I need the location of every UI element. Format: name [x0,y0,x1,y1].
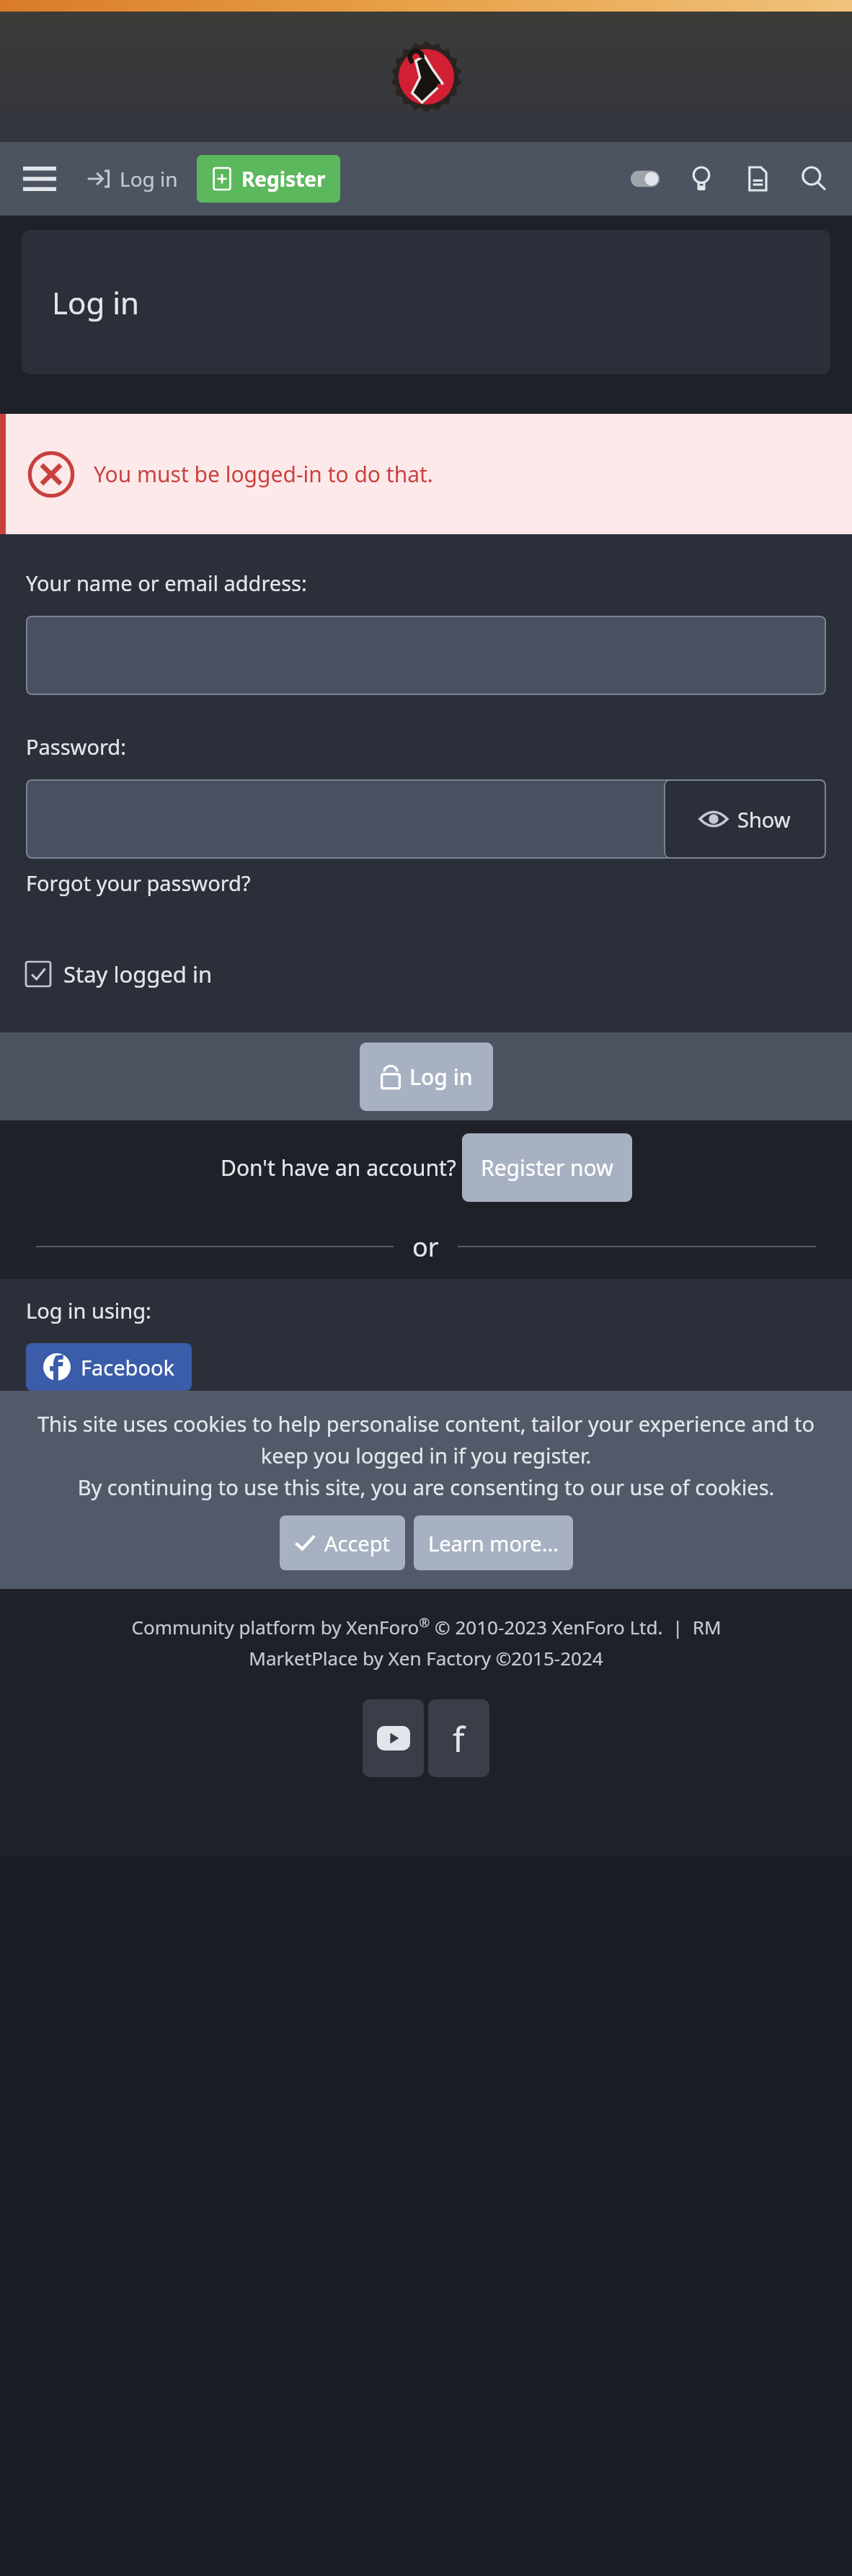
staticText: Stay logged in [63,959,213,989]
staticText: Password: [26,732,126,761]
staticText: Don't have an account? [221,1153,456,1182]
staticText: Facebook [81,1353,175,1381]
button[interactable]: Tips [673,142,729,216]
staticText: You must be logged-in to do that. [94,459,433,489]
button[interactable]: Stay logged in [26,959,213,989]
staticText: Your name or email address: [26,569,307,597]
staticText: Register [241,165,326,192]
staticText: This site uses cookies to help personali… [29,1409,823,1501]
button[interactable]: Register [197,155,340,203]
staticText: Log in [52,282,139,323]
button[interactable]: Facebook [428,1699,489,1777]
staticText: Log in using: [26,1296,151,1324]
button[interactable]: Show [664,779,826,859]
button[interactable]: YouTube [363,1699,424,1777]
staticText: Log in [120,165,178,192]
staticText: Show [737,805,791,833]
button[interactable] [26,616,826,695]
staticText: Accept [324,1529,391,1557]
staticText: Log in [409,1062,473,1092]
button[interactable]: Log in [86,142,178,216]
staticText: MarketPlace by Xen Factory ©2015-2024 [249,1645,603,1670]
button[interactable]: Facebook [26,1343,192,1391]
button[interactable] [26,779,664,859]
button[interactable]: Forgot your password? [26,869,251,897]
button[interactable]: Search [786,142,842,216]
button[interactable]: Learn more... [414,1515,573,1570]
staticText: f [453,1715,465,1762]
staticText: or [412,1229,439,1265]
staticText: Register now [481,1153,613,1182]
button[interactable]: Accept [280,1515,405,1570]
button[interactable]: Menu [16,155,63,203]
staticText: Community platform by XenForo® © 2010-20… [131,1614,722,1639]
staticText: Learn more... [428,1529,559,1557]
button[interactable]: Log in [360,1043,493,1111]
button[interactable]: Dark mode [617,142,673,216]
button[interactable]: Pages [729,142,786,216]
button[interactable]: Register now [462,1133,632,1202]
